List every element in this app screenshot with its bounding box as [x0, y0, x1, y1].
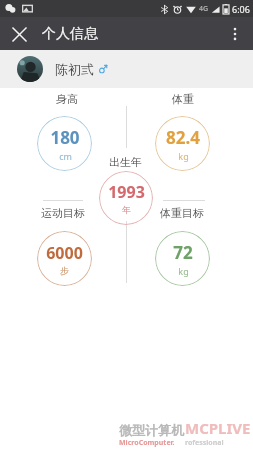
button[interactable]: Birth year 1993	[99, 171, 153, 225]
staticText: 6000	[46, 242, 83, 264]
button[interactable]: More options	[221, 20, 249, 48]
button[interactable]: Weight 82.4 kg	[155, 116, 210, 171]
staticText: 陈初弎	[55, 61, 94, 77]
staticText: rofessional	[185, 438, 224, 448]
staticText: cm	[59, 150, 72, 162]
button[interactable]: Weight goal 72 kg	[155, 231, 210, 286]
staticText: 步	[60, 265, 69, 276]
staticText: kg	[178, 150, 189, 162]
staticText: MCPLIVE	[185, 418, 251, 438]
button[interactable]: Height 180 cm	[37, 116, 92, 171]
staticText: kg	[178, 265, 189, 277]
staticText: 微型计算机	[119, 422, 184, 438]
staticText: 年	[122, 204, 131, 215]
staticText: MicroComputer.	[119, 438, 175, 448]
staticText: 180	[50, 126, 80, 149]
button[interactable]: Step goal 6000 steps	[37, 231, 92, 286]
button[interactable]: Close	[5, 20, 33, 48]
staticText: 身高	[56, 92, 78, 106]
staticText: 体重目标	[160, 206, 204, 220]
staticText: 运动目标	[41, 206, 85, 220]
staticText: 4G	[199, 4, 209, 14]
staticText: 82.4	[166, 126, 200, 149]
staticText: 体重	[172, 92, 194, 106]
staticText: 1993	[108, 181, 145, 203]
staticText: 6:06	[232, 3, 250, 15]
staticText: 72	[173, 241, 193, 264]
staticText: 个人信息	[42, 25, 98, 43]
staticText: 出生年	[109, 155, 142, 169]
button[interactable]: 陈初弎	[0, 50, 253, 88]
